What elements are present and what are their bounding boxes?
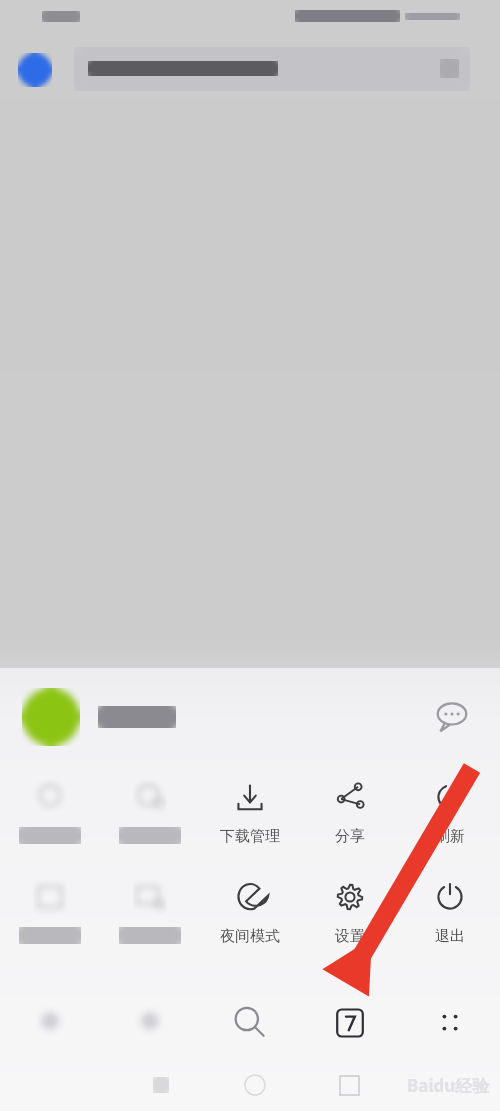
button[interactable]: Back: [0, 987, 100, 1059]
button[interactable]: [0, 866, 100, 966]
button[interactable]: More: [400, 987, 500, 1059]
button[interactable]: Messages: [426, 691, 478, 743]
staticText: 夜间模式: [220, 927, 280, 946]
button[interactable]: [100, 866, 200, 966]
button[interactable]: 下载管理: [200, 766, 300, 866]
staticText: 下载管理: [220, 827, 280, 846]
button[interactable]: 刷新: [400, 766, 500, 866]
staticText: 刷新: [435, 827, 465, 846]
staticText: 设置: [335, 927, 365, 946]
button[interactable]: [0, 766, 100, 866]
button[interactable]: 夜间模式: [200, 866, 300, 966]
button[interactable]: 退出: [400, 866, 500, 966]
button[interactable]: Search: [200, 987, 300, 1059]
staticText: 分享: [335, 827, 365, 846]
button[interactable]: 分享: [300, 766, 400, 866]
button[interactable]: Forward: [100, 987, 200, 1059]
button[interactable]: [100, 766, 200, 866]
staticText: 退出: [435, 927, 465, 946]
staticText: Baidu经验: [407, 1074, 490, 1097]
button[interactable]: 设置: [300, 866, 400, 966]
button[interactable]: Account avatar: [22, 688, 80, 746]
button[interactable]: Tabs: [300, 987, 400, 1059]
